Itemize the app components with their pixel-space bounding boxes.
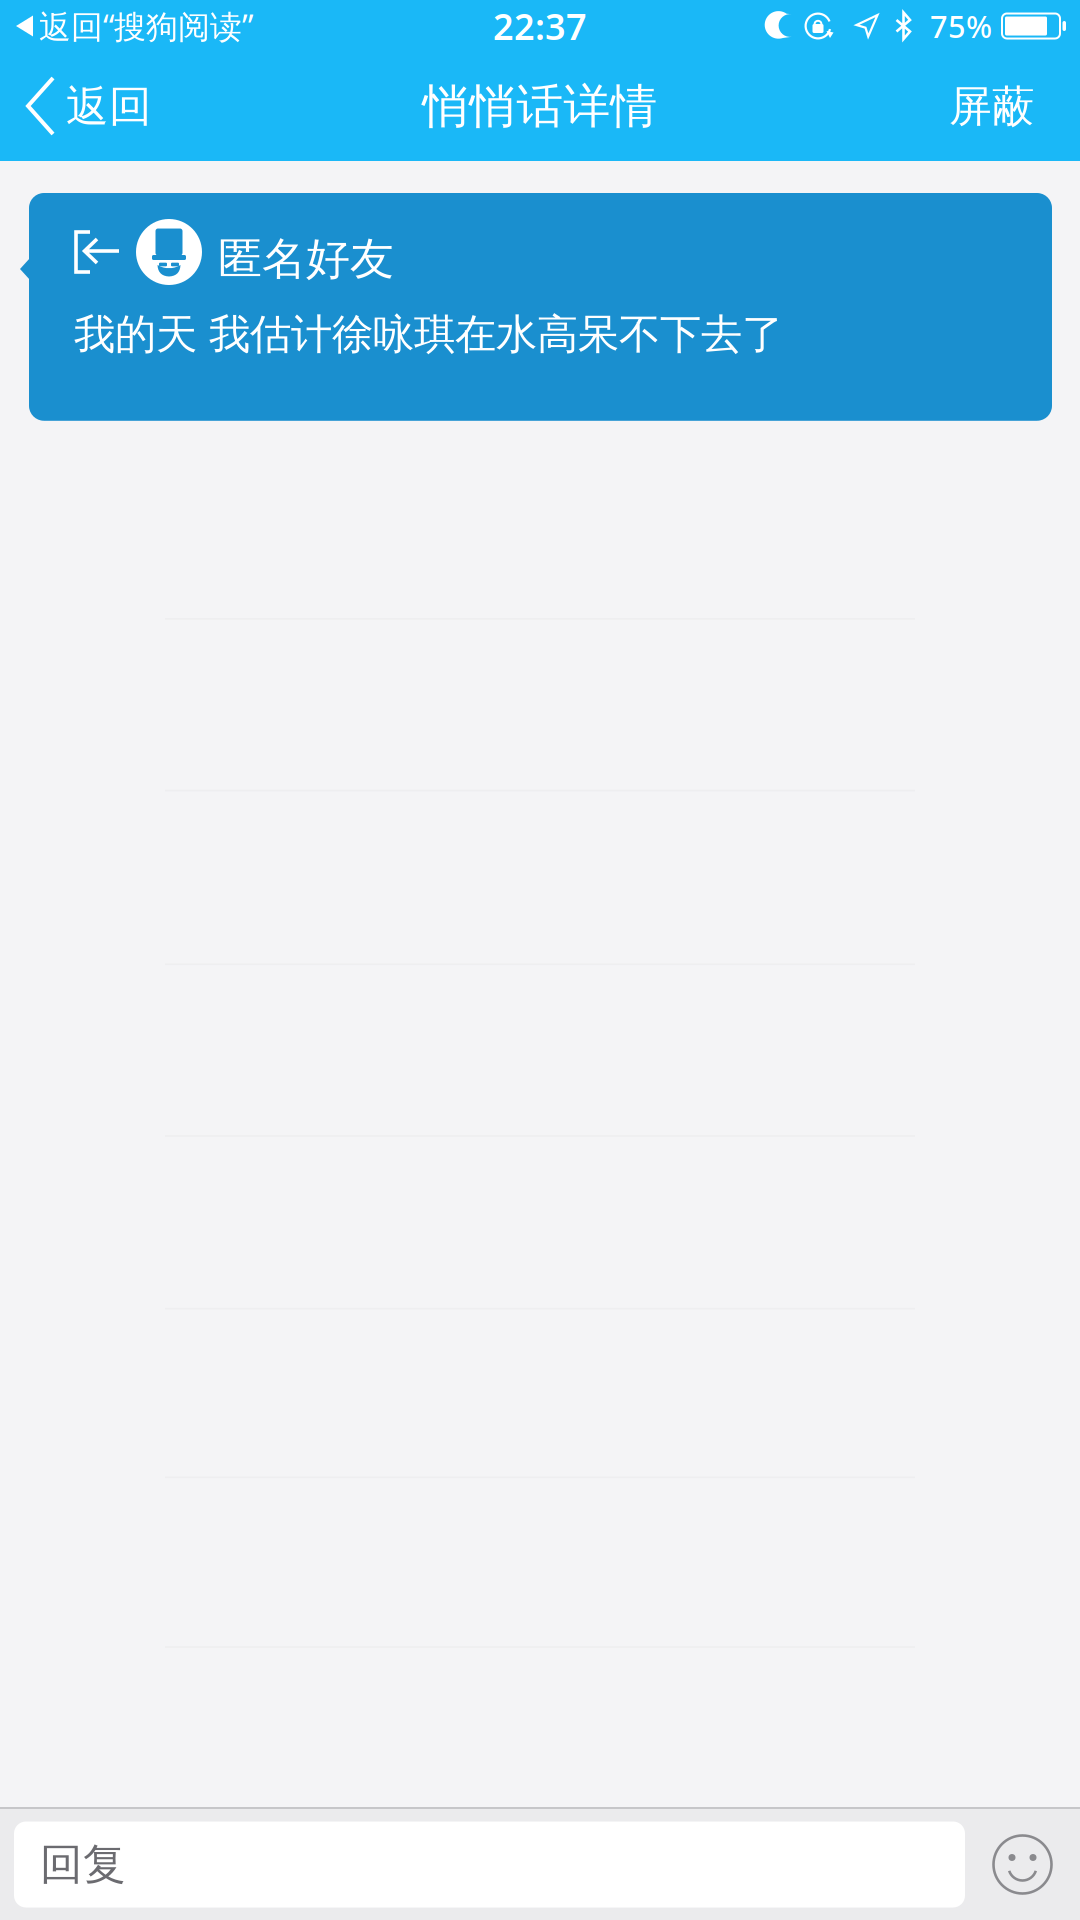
staticText: 返回 (66, 80, 152, 133)
button[interactable]: 匿名好友 (29, 193, 1052, 421)
button[interactable]: 屏蔽 (904, 52, 1080, 161)
button[interactable]: 返回 (0, 52, 177, 161)
staticText: 22:37 (493, 2, 587, 50)
button[interactable]: Emoji (965, 1809, 1080, 1920)
staticText: 回复 (40, 1838, 126, 1891)
staticText: 悄悄话详情 (422, 78, 657, 135)
button[interactable]: 回复 (14, 1821, 965, 1907)
staticText: 我的天 我估计徐咏琪在水高呆不下去了 (74, 309, 783, 360)
staticText: 返回“搜狗阅读” (39, 5, 253, 47)
staticText: 屏蔽 (949, 80, 1035, 133)
staticText: 匿名好友 (218, 232, 394, 286)
staticText: 75% (930, 6, 992, 46)
